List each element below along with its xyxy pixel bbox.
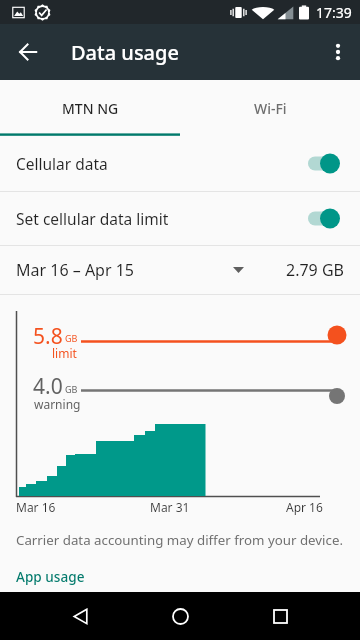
staticText: 2.79 GB bbox=[286, 259, 344, 281]
staticText: warning bbox=[34, 396, 81, 412]
button[interactable]: Home bbox=[156, 592, 204, 640]
button[interactable]: Cellular data bbox=[0, 136, 360, 191]
button[interactable]: Wi-Fi bbox=[180, 80, 360, 136]
staticText: Mar 16 bbox=[16, 499, 56, 515]
staticText: Set cellular data limit bbox=[16, 208, 169, 229]
staticText: limit bbox=[52, 345, 77, 361]
staticText: Mar 16 – Apr 15 bbox=[16, 259, 135, 281]
staticText: Wi-Fi bbox=[254, 99, 287, 118]
button[interactable]: Back bbox=[56, 592, 104, 640]
staticText: Cellular data bbox=[16, 153, 108, 174]
button[interactable]: App usage bbox=[0, 549, 360, 597]
button[interactable]: Recents bbox=[256, 592, 304, 640]
staticText: 5.8 bbox=[33, 322, 63, 351]
staticText: Apr 16 bbox=[286, 499, 323, 515]
staticText: 4.0 bbox=[33, 372, 63, 401]
staticText: App usage bbox=[16, 567, 85, 586]
staticText: Data usage bbox=[71, 39, 179, 66]
staticText: GB bbox=[65, 332, 78, 344]
staticText: GB bbox=[65, 383, 78, 395]
button[interactable]: Set cellular data limit bbox=[0, 192, 360, 245]
button[interactable]: Navigate up bbox=[4, 28, 52, 76]
staticText: Mar 31 bbox=[150, 499, 190, 515]
button[interactable]: Mar 16 – Apr 15 bbox=[0, 246, 360, 294]
staticText: MTN NG bbox=[62, 99, 119, 118]
button[interactable]: MTN NG bbox=[0, 80, 180, 136]
staticText: Carrier data accounting may differ from … bbox=[16, 531, 343, 549]
button[interactable]: More options bbox=[312, 28, 360, 76]
staticText: 17:39 bbox=[316, 3, 352, 22]
